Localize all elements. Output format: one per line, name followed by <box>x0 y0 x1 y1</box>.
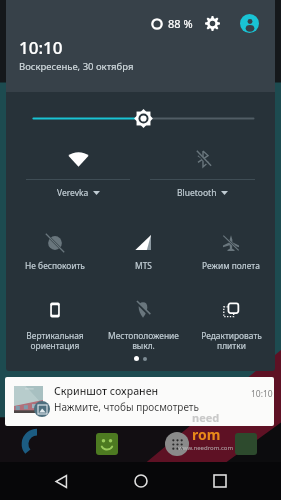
button[interactable]: MTS <box>99 228 187 278</box>
staticText: need <box>192 410 220 425</box>
staticText: Verevka <box>57 187 89 199</box>
staticText: MTS <box>135 260 152 271</box>
button[interactable]: User account <box>240 14 259 33</box>
staticText: Редактировать плитки <box>201 330 262 351</box>
button[interactable]: Вертикальная ориентация <box>11 295 99 351</box>
button[interactable]: Режим полета <box>187 228 275 278</box>
staticText: Bluetooth <box>177 187 217 199</box>
staticText: www.needrom.com <box>178 444 234 452</box>
staticText: Скриншот сохранен <box>54 384 159 398</box>
button[interactable]: Settings <box>204 15 221 32</box>
staticText: rom <box>192 425 221 444</box>
staticText: Не беспокоить <box>25 260 85 271</box>
staticText: 88 % <box>168 16 193 31</box>
staticText: Режим полета <box>202 260 260 271</box>
button[interactable]: Recent apps <box>201 462 239 500</box>
button[interactable]: Не беспокоить <box>11 228 99 278</box>
staticText: 10:10 <box>19 36 63 59</box>
button[interactable]: Verevka <box>16 140 140 202</box>
staticText: 10:10 <box>251 388 273 400</box>
button[interactable]: Скриншот сохранен <box>5 377 274 426</box>
staticText: Воскресенье, 30 октября <box>19 60 134 73</box>
staticText: Вертикальная ориентация <box>26 330 84 351</box>
button[interactable]: Home <box>122 462 160 500</box>
button[interactable]: Местоположение выкл. <box>99 295 187 351</box>
staticText: Местоположение выкл. <box>108 330 179 351</box>
button[interactable]: Bluetooth <box>140 140 265 202</box>
button[interactable]: Редактировать плитки <box>187 295 275 351</box>
button[interactable]: Back <box>42 462 80 500</box>
staticText: Нажмите, чтобы просмотреть <box>54 400 199 414</box>
